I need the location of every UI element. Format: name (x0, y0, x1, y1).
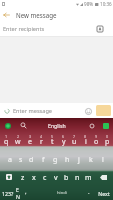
button[interactable]: Attach (1, 105, 13, 117)
staticText: o (94, 137, 99, 147)
staticText: EN (16, 186, 18, 200)
staticText: 98% (84, 1, 94, 7)
button[interactable]: j (73, 150, 85, 168)
staticText: 2 (17, 134, 20, 139)
button[interactable]: . (83, 186, 94, 200)
staticText: 3 (29, 134, 32, 139)
button[interactable]: s (15, 150, 26, 168)
staticText: h (65, 155, 70, 165)
staticText: j (78, 155, 80, 165)
staticText: y (62, 137, 66, 147)
button[interactable]: 9 (91, 132, 102, 150)
staticText: m (85, 173, 92, 183)
staticText: n (75, 173, 80, 183)
staticText: 0 (106, 134, 109, 139)
button[interactable]: Add contacts (94, 23, 106, 35)
staticText: l (102, 155, 104, 165)
staticText: i (85, 137, 87, 147)
button[interactable]: a (4, 150, 15, 168)
staticText: d (29, 155, 34, 165)
staticText: 10:36 (100, 1, 112, 7)
staticText: c (43, 173, 47, 183)
button[interactable]: Send (96, 105, 111, 116)
button[interactable]: 6 (58, 132, 69, 150)
button[interactable]: 7 (69, 132, 80, 150)
staticText: 9 (95, 134, 98, 139)
staticText: . (88, 188, 90, 196)
staticText: Next (98, 190, 110, 197)
button[interactable]: Emoji (82, 105, 94, 117)
staticText: b (64, 173, 69, 183)
button[interactable]: 4 (36, 132, 47, 150)
staticText: t (51, 137, 54, 147)
button[interactable]: Keyboard theme (100, 120, 111, 131)
button[interactable]: h (61, 150, 73, 168)
button[interactable]: Next (94, 186, 113, 200)
staticText: 5 (51, 134, 54, 139)
staticText: New message (16, 11, 57, 19)
staticText: w (15, 137, 21, 147)
button[interactable]: 5 (47, 132, 58, 150)
button[interactable]: z (17, 168, 28, 186)
button[interactable]: EN (16, 186, 18, 200)
button[interactable]: Shift (0, 168, 17, 186)
button[interactable]: g (49, 150, 61, 168)
staticText: e (28, 137, 32, 147)
staticText: Enter recipients (3, 25, 45, 33)
button[interactable]: 2 (12, 132, 24, 150)
button[interactable]: Backspace (94, 168, 113, 186)
staticText: 123? (2, 190, 14, 197)
button[interactable]: , (18, 186, 34, 200)
button[interactable]: d (26, 150, 37, 168)
staticText: a (8, 155, 12, 165)
button[interactable]: Back (0, 8, 13, 21)
button[interactable]: 8 (80, 132, 91, 150)
staticText: s (19, 155, 23, 165)
staticText: g (53, 155, 58, 165)
staticText: 1 (5, 134, 8, 139)
staticText: English (48, 122, 66, 129)
button[interactable]: Space (34, 186, 83, 200)
staticText: p (105, 137, 110, 147)
button[interactable]: 0 (102, 132, 113, 150)
button[interactable]: m (83, 168, 94, 186)
staticText: Enter message (13, 107, 52, 115)
button[interactable]: x (28, 168, 39, 186)
button[interactable]: f (37, 150, 49, 168)
button[interactable]: k (85, 150, 97, 168)
staticText: q (4, 137, 9, 147)
button[interactable]: 3 (24, 132, 36, 150)
button[interactable]: Settings (86, 120, 97, 131)
staticText: x (32, 173, 36, 183)
staticText: f (42, 155, 45, 165)
staticText: k (89, 155, 93, 165)
staticText: 8 (84, 134, 87, 139)
button[interactable]: c (39, 168, 50, 186)
staticText: hindi (57, 190, 67, 196)
staticText: 7 (73, 134, 76, 139)
staticText: z (21, 173, 25, 183)
staticText: , (25, 188, 27, 196)
button[interactable]: v (50, 168, 61, 186)
staticText: 4 (40, 134, 43, 139)
staticText: u (72, 137, 77, 147)
button[interactable]: l (97, 150, 109, 168)
button[interactable]: Search (18, 120, 29, 131)
staticText: 6 (62, 134, 65, 139)
button[interactable]: 123? (0, 186, 16, 200)
button[interactable]: b (61, 168, 72, 186)
staticText: r (40, 137, 43, 147)
staticText: v (54, 173, 58, 183)
button[interactable]: 1 (0, 132, 12, 150)
button[interactable]: Voice input (2, 120, 13, 131)
button[interactable]: n (72, 168, 83, 186)
